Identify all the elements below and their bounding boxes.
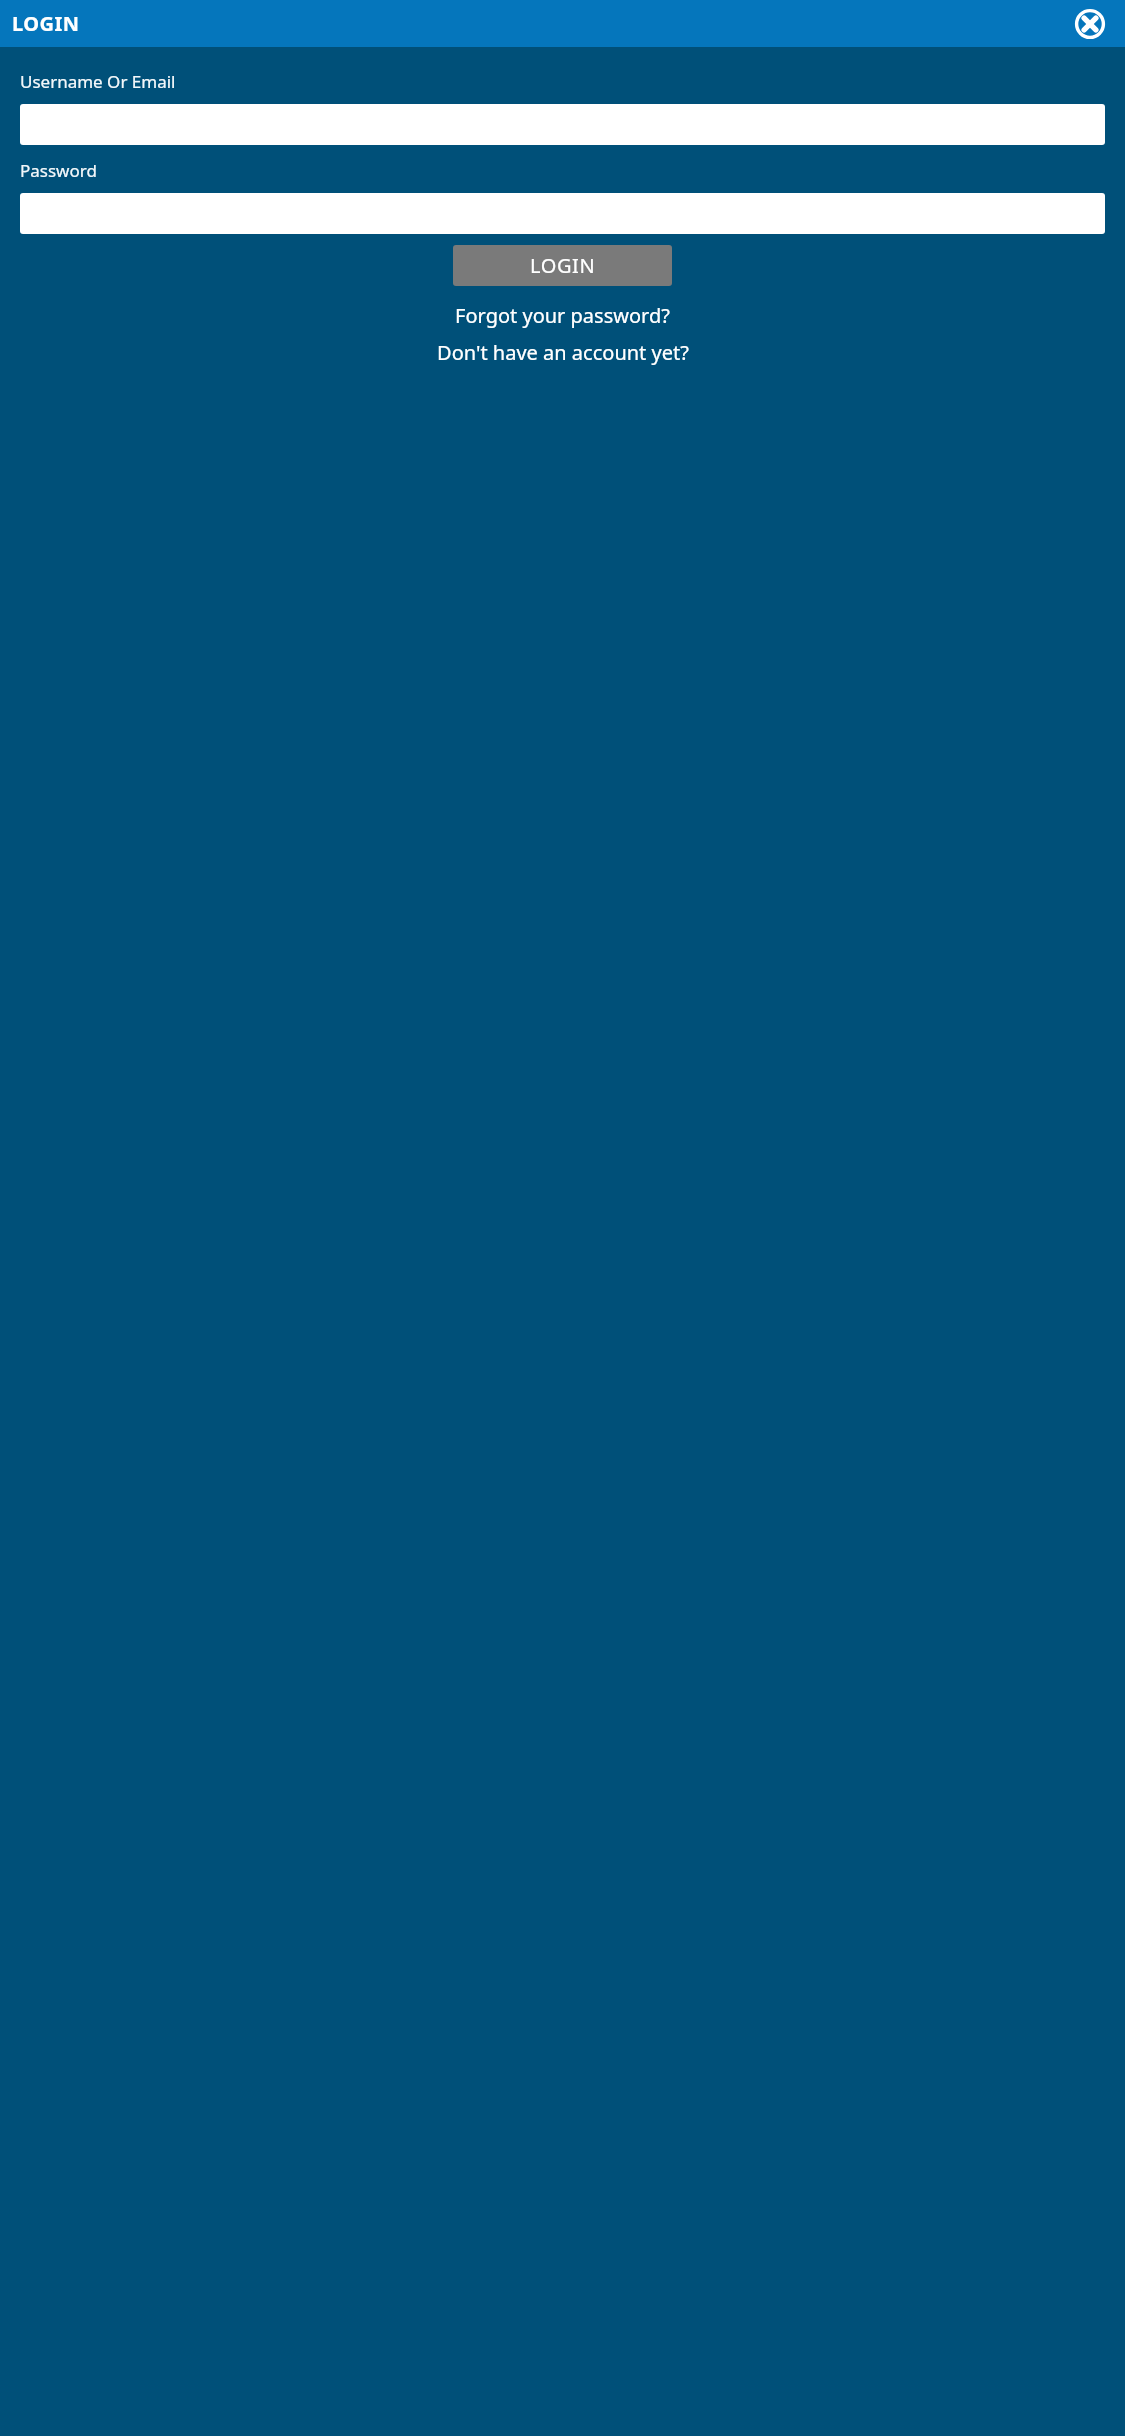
button[interactable]: LOGIN: [453, 245, 672, 286]
button[interactable]: Forgot your password?: [20, 302, 1105, 329]
button[interactable]: Don't have an account yet?: [20, 339, 1105, 366]
staticText: LOGIN: [530, 252, 596, 279]
staticText: LOGIN: [12, 10, 80, 37]
staticText: Password: [20, 159, 97, 182]
staticText: Forgot your password?: [455, 302, 670, 329]
staticText: Username Or Email: [20, 70, 176, 93]
staticText: Don't have an account yet?: [437, 339, 689, 366]
button[interactable]: Close: [1075, 9, 1105, 39]
